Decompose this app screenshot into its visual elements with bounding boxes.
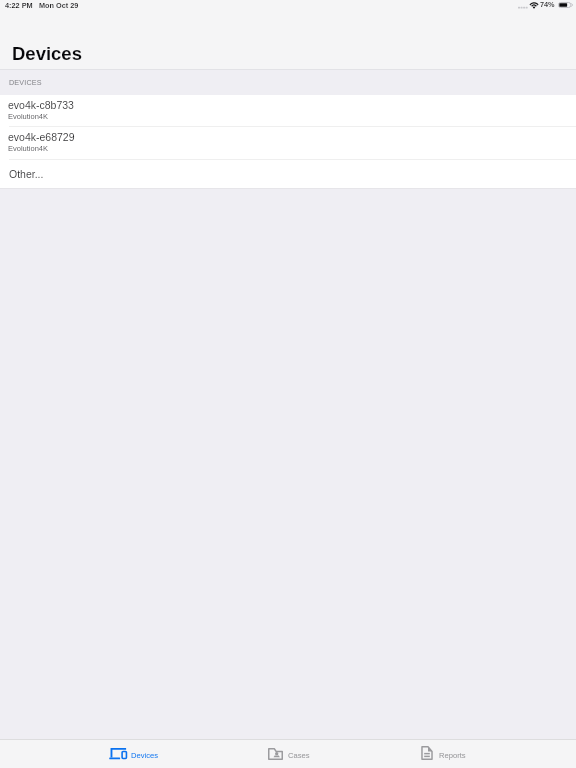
staticText: Cases — [288, 751, 310, 759]
staticText: Other... — [9, 168, 44, 180]
staticText: 74% — [540, 0, 555, 8]
staticText: Reports — [439, 751, 466, 759]
button[interactable]: evo4k-e68729 — [0, 127, 576, 159]
staticText: Devices — [12, 43, 82, 64]
staticText: DEVICES — [9, 78, 42, 86]
staticText: 4:22 PM — [5, 1, 33, 9]
staticText: evo4k-c8b733 — [8, 99, 74, 111]
staticText: evo4k-e68729 — [8, 131, 75, 143]
button[interactable]: Other... — [0, 160, 576, 188]
staticText: Evolution4K — [8, 144, 49, 152]
button[interactable]: evo4k-c8b733 — [0, 95, 576, 126]
button[interactable]: Reports — [366, 740, 521, 768]
button[interactable]: Devices — [56, 740, 211, 768]
staticText: Evolution4K — [8, 112, 49, 120]
staticText: Devices — [131, 751, 159, 759]
staticText: Mon Oct 29 — [39, 1, 79, 9]
button[interactable]: Cases — [211, 740, 366, 768]
